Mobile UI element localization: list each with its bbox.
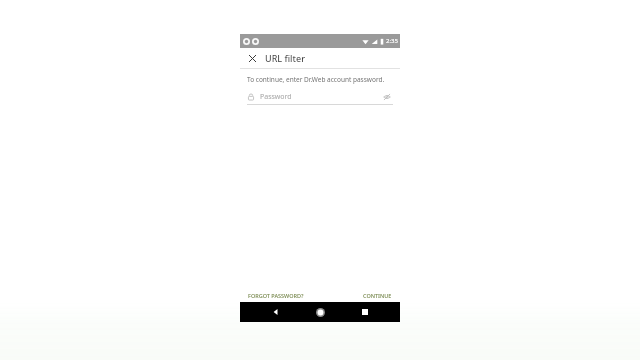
staticText: CONTINUE bbox=[363, 292, 392, 299]
button[interactable]: Show password bbox=[381, 91, 393, 103]
button[interactable]: Home bbox=[311, 303, 329, 321]
button[interactable]: Recents bbox=[356, 303, 374, 321]
staticText: To continue, enter Dr.Web account passwo… bbox=[247, 75, 393, 84]
button[interactable]: Back bbox=[267, 303, 285, 321]
button[interactable]: Password bbox=[247, 89, 393, 104]
button[interactable]: CONTINUE bbox=[361, 290, 394, 301]
staticText: URL filter bbox=[265, 52, 305, 64]
staticText: FORGOT PASSWORD? bbox=[248, 292, 304, 299]
button[interactable]: Close bbox=[245, 51, 259, 65]
staticText: 2:35 bbox=[386, 37, 398, 45]
button[interactable]: FORGOT PASSWORD? bbox=[246, 290, 306, 301]
staticText: Password bbox=[260, 92, 292, 102]
